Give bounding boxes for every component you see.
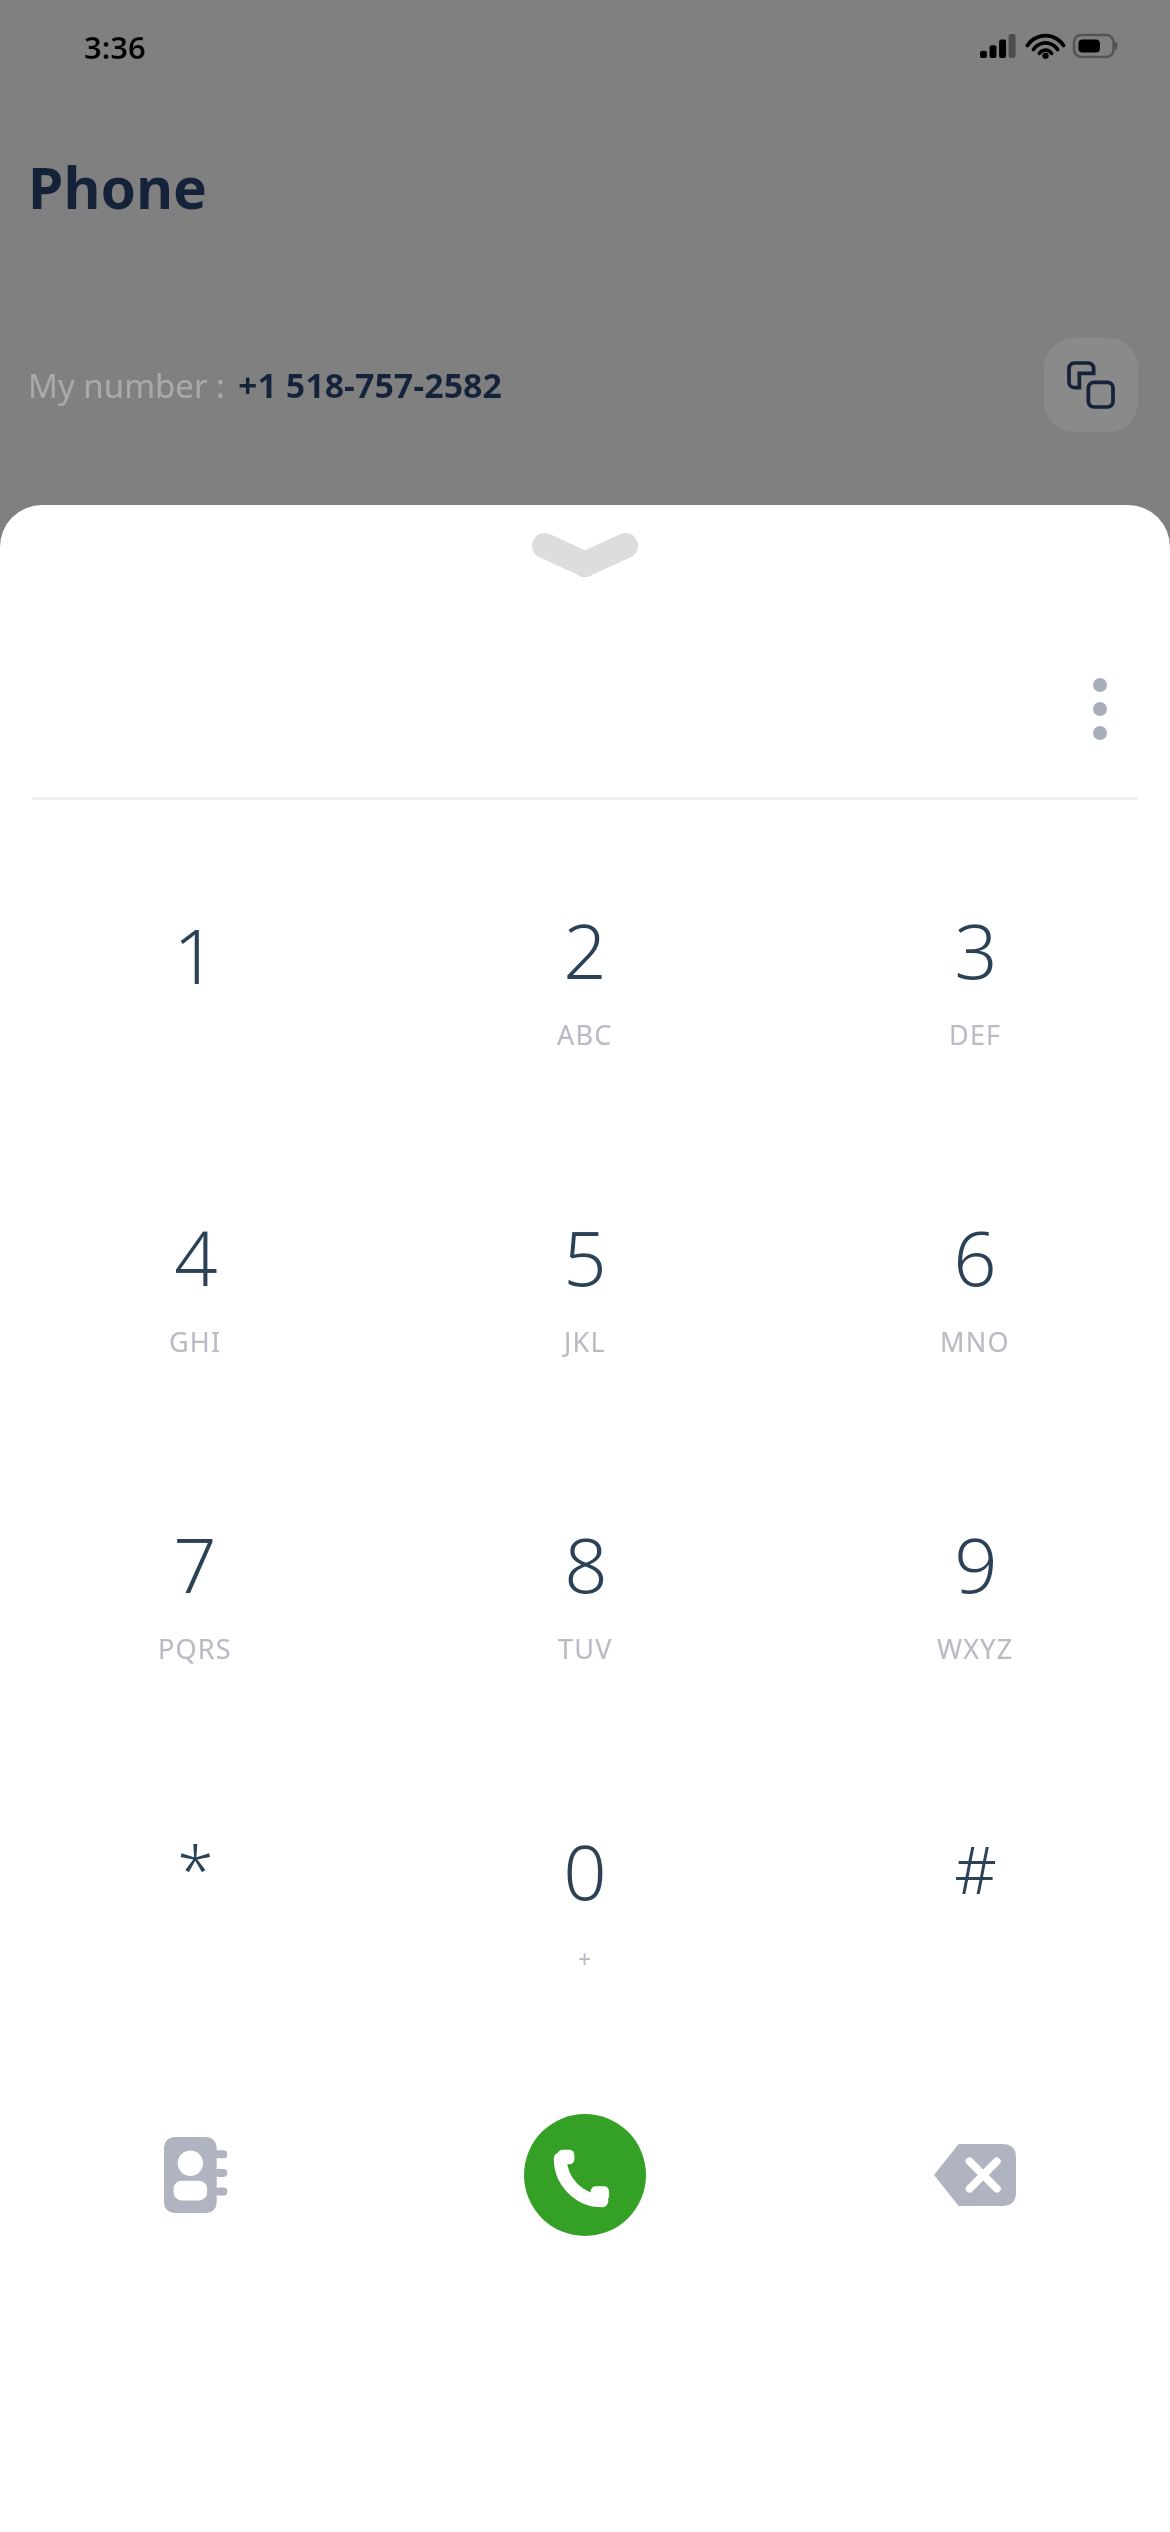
button[interactable]: Copy my number [1044,338,1138,432]
button[interactable]: 3 [780,822,1170,1129]
button[interactable]: More options [1052,661,1148,757]
staticText: + [578,1943,593,1974]
button[interactable]: 7 [0,1436,390,1743]
staticText: MNO [940,1323,1010,1360]
staticText: 9 [954,1512,998,1616]
button[interactable]: * [0,1743,390,2050]
staticText: 2 [563,898,607,1002]
staticText: Phone [28,148,208,226]
button[interactable]: Collapse keypad [0,505,1170,637]
button[interactable]: 1 [0,822,390,1129]
staticText: My number : [28,363,225,408]
button[interactable]: Backspace [780,2050,1170,2300]
staticText: TUV [558,1630,613,1667]
staticText: 6 [953,1205,997,1309]
button[interactable]: 6 [780,1129,1170,1436]
staticText: DEF [949,1016,1002,1053]
button[interactable]: # [780,1743,1170,2050]
staticText: 8 [564,1512,608,1616]
staticText: WXYZ [937,1630,1014,1667]
button[interactable]: 0 [390,1743,780,2050]
staticText: 1 [173,903,217,1007]
staticText: GHI [169,1323,222,1360]
staticText: +1 518-757-2582 [238,362,502,408]
staticText: PQRS [158,1630,232,1667]
button[interactable]: Contacts [0,2050,390,2300]
staticText: 5 [563,1205,607,1309]
button[interactable]: Call [524,2114,646,2236]
staticText: * [177,1823,214,1913]
staticText: ABC [557,1016,613,1053]
staticText: # [954,1823,997,1913]
staticText: 7 [173,1512,217,1616]
staticText: JKL [564,1323,606,1360]
staticText: 4 [174,1205,218,1309]
button[interactable]: 8 [390,1436,780,1743]
button[interactable]: 5 [390,1129,780,1436]
button[interactable]: 2 [390,822,780,1129]
staticText: 3 [954,898,998,1002]
button[interactable]: 4 [0,1129,390,1436]
button[interactable]: 9 [780,1436,1170,1743]
staticText: 3:36 [84,26,146,68]
staticText: 0 [563,1819,607,1923]
